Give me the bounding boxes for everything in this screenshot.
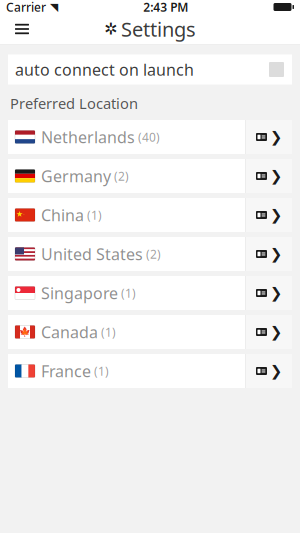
staticText: Germany xyxy=(41,165,111,187)
button[interactable]: Singapore xyxy=(8,276,292,310)
staticText: France xyxy=(41,360,91,382)
staticText: ❯ xyxy=(270,207,282,223)
staticText: (40) xyxy=(138,129,160,145)
staticText: ❯ xyxy=(270,285,282,301)
staticText: ❯ xyxy=(270,324,282,340)
button[interactable]: Menu xyxy=(0,14,44,44)
staticText: Netherlands xyxy=(41,126,135,148)
staticText: ❯ xyxy=(270,246,282,262)
staticText: Settings xyxy=(121,16,196,42)
staticText: 🍁 xyxy=(19,327,31,337)
staticText: ❯ xyxy=(270,363,282,379)
staticText: China xyxy=(41,204,84,226)
staticText: 2:43 PM xyxy=(143,0,188,15)
staticText: (1) xyxy=(94,363,109,379)
staticText: Canada xyxy=(41,321,98,343)
staticText: (1) xyxy=(121,285,136,301)
button[interactable]: auto connect on launch xyxy=(8,54,292,84)
staticText: United States xyxy=(41,243,143,265)
staticText: ❯ xyxy=(270,129,282,145)
button[interactable]: United States xyxy=(8,237,292,271)
staticText: (1) xyxy=(101,324,116,340)
staticText: ❯ xyxy=(270,168,282,184)
button[interactable]: Germany xyxy=(8,159,292,193)
button[interactable]: France xyxy=(8,354,292,388)
staticText: (1) xyxy=(87,207,102,223)
staticText: auto connect on launch xyxy=(15,59,194,80)
button[interactable]: Netherlands xyxy=(8,120,292,154)
staticText: ◥ xyxy=(50,1,58,13)
staticText: (2) xyxy=(114,168,129,184)
staticText: Carrier xyxy=(6,0,46,15)
staticText: ✲ xyxy=(104,20,117,38)
staticText: ★ xyxy=(16,209,23,219)
staticText: Preferred Location xyxy=(10,93,138,113)
staticText: · xyxy=(23,210,25,218)
staticText: Singapore xyxy=(41,282,118,304)
button[interactable]: 🍁 xyxy=(8,315,292,349)
staticText: (2) xyxy=(146,246,161,262)
button[interactable]: ★ xyxy=(8,198,292,232)
